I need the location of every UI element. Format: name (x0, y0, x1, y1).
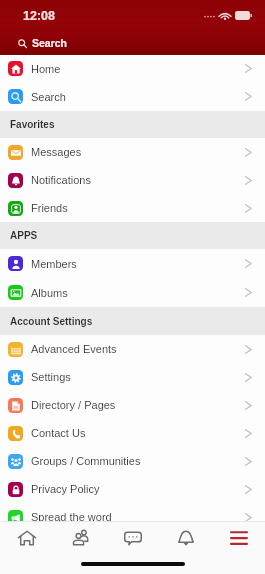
staticText: Account Settings (10, 316, 93, 327)
button[interactable]: Groups / Communities (0, 447, 265, 475)
button[interactable]: Messages (106, 522, 159, 553)
staticText: Settings (31, 371, 71, 383)
staticText: Privacy Policy (31, 483, 100, 495)
button[interactable]: Settings (0, 363, 265, 391)
button[interactable]: Friends (0, 194, 265, 222)
staticText: 12:08 (23, 9, 55, 23)
staticText: Directory / Pages (31, 399, 116, 411)
button[interactable]: Members (0, 249, 265, 278)
staticText: Advanced Events (31, 343, 117, 355)
staticText: Search (31, 91, 66, 103)
button[interactable]: Contact Us (0, 419, 265, 447)
staticText: Friends (31, 202, 68, 214)
staticText: Albums (31, 287, 68, 299)
button[interactable]: Friends (53, 522, 106, 553)
button[interactable]: Notifications (0, 166, 265, 194)
button[interactable]: Home (0, 55, 265, 82)
staticText: Favorites (10, 119, 55, 130)
button[interactable]: Messages (0, 138, 265, 166)
button[interactable]: Albums (0, 278, 265, 307)
button[interactable]: Advanced Events (0, 335, 265, 363)
button[interactable]: Menu (212, 522, 265, 553)
staticText: Spread the word (31, 511, 112, 523)
staticText: Notifications (31, 174, 91, 186)
staticText: Groups / Communities (31, 455, 141, 467)
staticText: Contact Us (31, 427, 86, 439)
staticText: Home (31, 63, 61, 75)
staticText: APPS (10, 230, 38, 241)
button[interactable]: Spread the word (0, 503, 265, 531)
button[interactable]: Home (0, 522, 53, 553)
staticText: Search (32, 37, 68, 49)
button[interactable]: Privacy Policy (0, 475, 265, 503)
button[interactable]: Directory / Pages (0, 391, 265, 419)
button[interactable]: Search (0, 82, 265, 111)
staticText: Members (31, 258, 77, 270)
staticText: Messages (31, 146, 82, 158)
button[interactable]: Notifications (159, 522, 212, 553)
